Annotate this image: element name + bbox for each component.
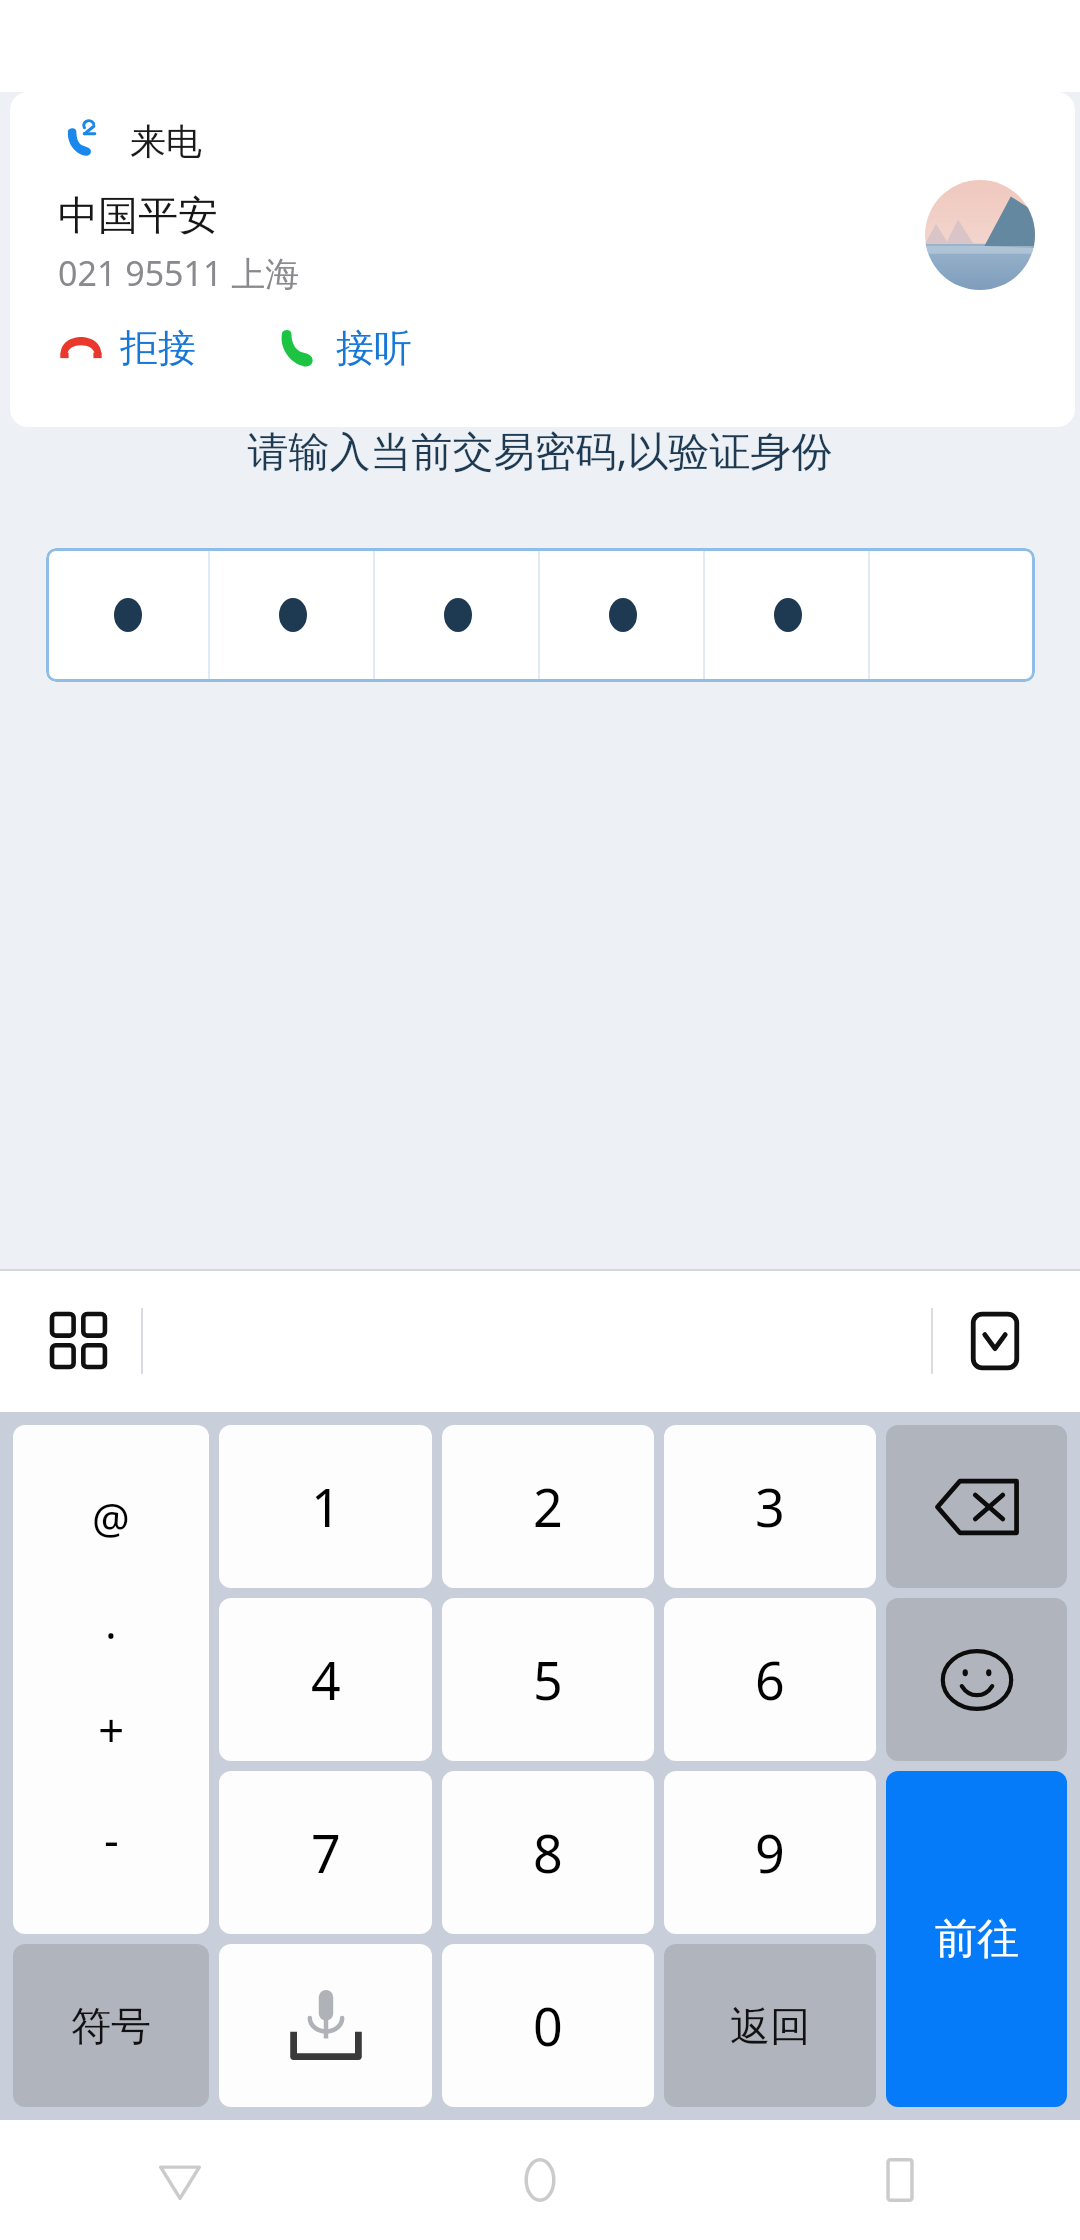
button[interactable]: 2 xyxy=(442,1425,654,1588)
button[interactable]: 8 xyxy=(442,1771,654,1934)
staticText: 9 xyxy=(755,1817,785,1888)
staticText: 3 xyxy=(755,1471,785,1542)
staticText: 8 xyxy=(533,1817,563,1888)
staticText: 7 xyxy=(311,1817,341,1888)
staticText: 接听 xyxy=(336,324,412,372)
button[interactable]: 9 xyxy=(664,1771,876,1934)
button[interactable]: 0 xyxy=(442,1944,654,2107)
button[interactable]: 接听 xyxy=(274,324,426,372)
button[interactable]: 来电 xyxy=(10,92,1075,427)
staticText: 请输入当前交易密码,以验证身份 xyxy=(0,422,1080,478)
staticText: 021 95511 上海 xyxy=(58,250,300,296)
button[interactable]: Hide keyboard xyxy=(956,1302,1034,1380)
staticText: 0 xyxy=(533,1990,563,2061)
button[interactable]: 符号 xyxy=(13,1944,209,2107)
button[interactable]: Home xyxy=(360,2120,720,2240)
staticText: 中国平安 xyxy=(58,190,218,240)
button[interactable]: Voice input xyxy=(219,1944,432,2107)
button[interactable]: 拒接 xyxy=(58,324,210,372)
button[interactable]: Backspace xyxy=(886,1425,1067,1588)
button[interactable]: 3 xyxy=(664,1425,876,1588)
staticText: 4 xyxy=(311,1644,341,1715)
button[interactable] xyxy=(46,548,1035,682)
staticText: 1 xyxy=(311,1471,341,1542)
staticText: 前往 xyxy=(935,1913,1019,1966)
button[interactable]: 返回 xyxy=(664,1944,876,2107)
staticText: + xyxy=(98,1698,125,1761)
staticText: 符号 xyxy=(71,2001,151,2051)
button[interactable]: @ xyxy=(13,1425,209,1934)
staticText: 返回 xyxy=(730,2001,810,2051)
staticText: 5 xyxy=(533,1644,563,1715)
staticText: . xyxy=(105,1592,117,1652)
staticText: 6 xyxy=(755,1644,785,1715)
staticText: 来电 xyxy=(130,119,202,164)
button[interactable]: Back xyxy=(0,2120,360,2240)
button[interactable]: Recent apps xyxy=(720,2120,1080,2240)
button[interactable]: 6 xyxy=(664,1598,876,1761)
button[interactable]: Emoji xyxy=(886,1598,1067,1761)
button[interactable]: 5 xyxy=(442,1598,654,1761)
button[interactable]: 7 xyxy=(219,1771,432,1934)
staticText: 拒接 xyxy=(120,324,196,372)
staticText: - xyxy=(104,1807,119,1870)
button[interactable]: 1 xyxy=(219,1425,432,1588)
button[interactable]: 4 xyxy=(219,1598,432,1761)
button[interactable]: Keyboard layouts xyxy=(44,1306,114,1376)
button[interactable]: 前往 xyxy=(886,1771,1067,2107)
staticText: 2 xyxy=(533,1471,563,1542)
staticText: @ xyxy=(92,1489,130,1546)
